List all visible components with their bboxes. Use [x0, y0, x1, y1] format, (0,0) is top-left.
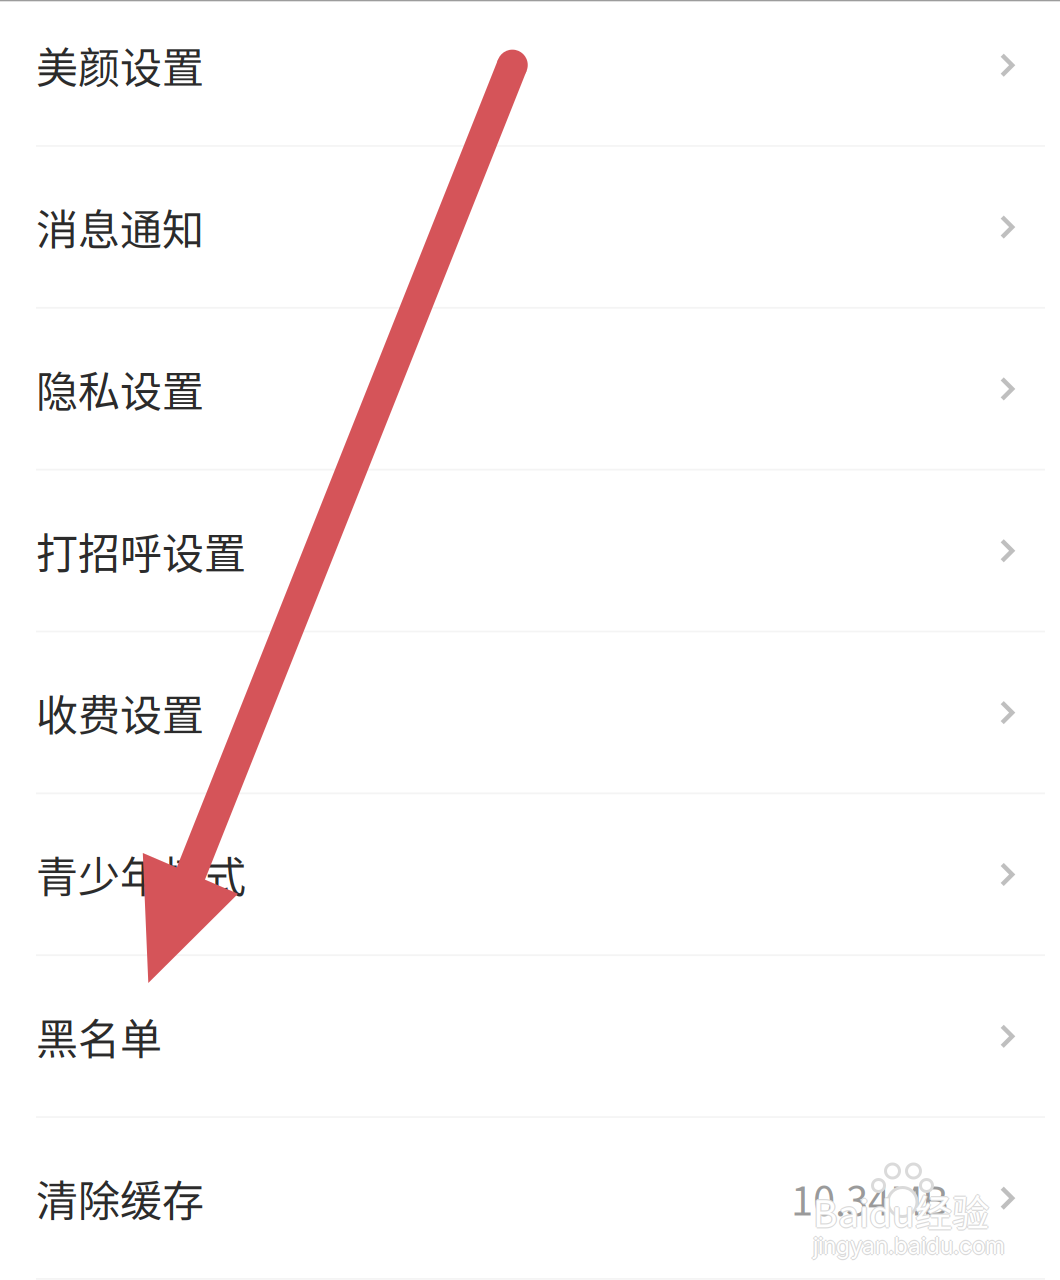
staticText: jingyan.baidu.com	[812, 1232, 1004, 1259]
staticText: 隐私设置	[36, 358, 204, 419]
button[interactable]: 青少年模式	[0, 794, 1060, 954]
button[interactable]: 消息通知	[0, 147, 1060, 307]
staticText: jingyan.baidu.com	[813, 1232, 1005, 1259]
button[interactable]: 隐私设置	[0, 309, 1060, 469]
staticText: jingyan.baidu.com	[813, 1233, 1005, 1261]
button[interactable]: 美颜设置	[0, 0, 1060, 145]
button[interactable]: 清除缓存	[0, 1118, 1060, 1278]
staticText: jingyan.baidu.com	[813, 1231, 1005, 1258]
button[interactable]: 收费设置	[0, 632, 1060, 792]
staticText: 消息通知	[36, 196, 204, 257]
staticText: Baidu经验	[813, 1184, 989, 1238]
staticText: 清除缓存	[36, 1168, 204, 1228]
staticText: 打招呼设置	[36, 520, 246, 581]
staticText: Baidu经验	[813, 1183, 989, 1237]
staticText: 黑名单	[36, 1006, 162, 1066]
staticText: jingyan.baidu.com	[814, 1232, 1006, 1259]
staticText: 美颜设置	[36, 35, 204, 95]
staticText: Baidu经验	[814, 1184, 990, 1238]
staticText: 青少年模式	[36, 844, 246, 905]
staticText: 收费设置	[36, 682, 204, 743]
staticText: Baidu经验	[813, 1185, 989, 1239]
button[interactable]: 黑名单	[0, 956, 1060, 1116]
staticText: 10.34MB	[791, 1169, 948, 1227]
button[interactable]: 打招呼设置	[0, 471, 1060, 631]
staticText: Baidu经验	[812, 1184, 988, 1238]
